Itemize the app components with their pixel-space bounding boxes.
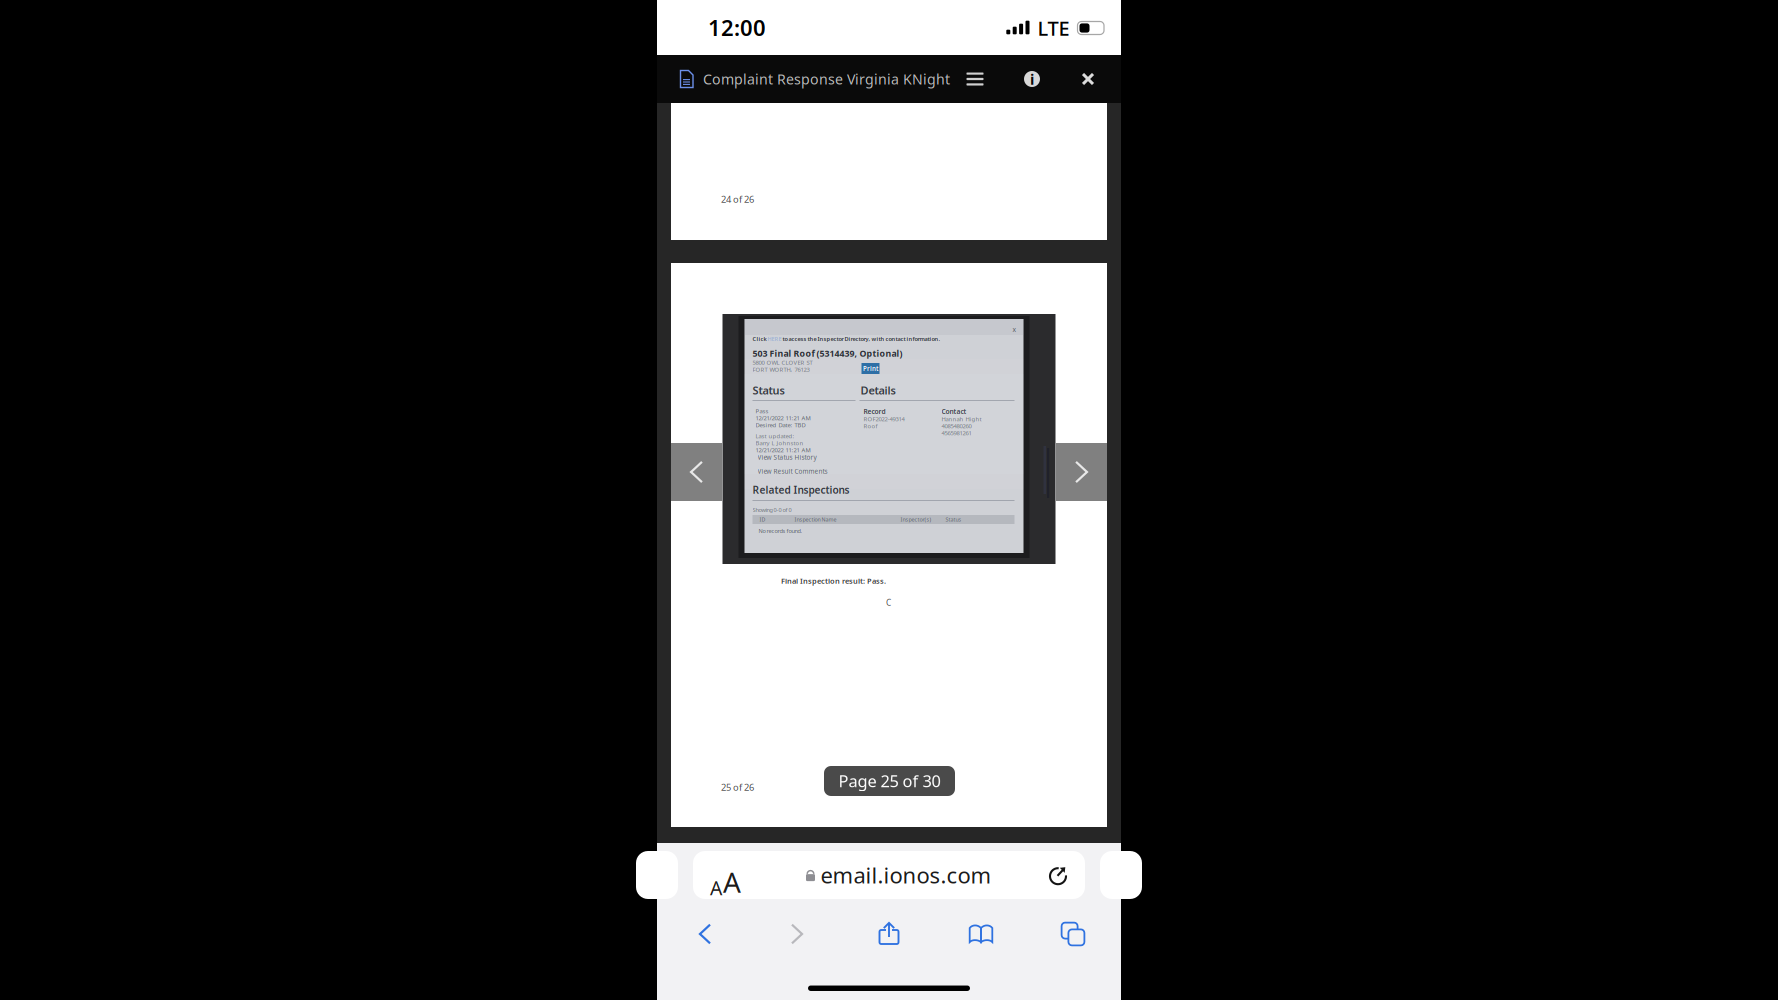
staticText: 503 Final Roof (5314439, Optional) (752, 347, 902, 359)
staticText: HERE (767, 335, 781, 342)
button[interactable]: Close (1077, 68, 1099, 90)
staticText: Hannah Hight (941, 415, 981, 423)
button[interactable]: Bookmarks (959, 914, 1003, 954)
staticText: A (710, 875, 722, 901)
button[interactable]: Previous page (671, 443, 722, 501)
staticText: 5800 OWL CLOVER ST (752, 358, 812, 366)
staticText: A (723, 863, 741, 901)
button[interactable]: Text size (710, 853, 750, 897)
staticText: 24 of 26 (721, 193, 754, 205)
staticText: Page 25 of 30 (838, 770, 940, 792)
staticText: No records found. (758, 527, 802, 534)
button[interactable]: Next page (1056, 443, 1107, 501)
staticText: Complaint Response Virginia KNight (703, 70, 950, 88)
staticText: Print (863, 364, 878, 372)
staticText: Final Inspection result: Pass. (781, 576, 886, 586)
button[interactable]: Document info (1021, 68, 1043, 90)
staticText: 12/21/2022 11:21 AM (755, 414, 810, 422)
staticText: i (1030, 69, 1034, 89)
staticText: Last updated: (755, 432, 794, 440)
staticText: 12:00 (708, 13, 766, 42)
staticText: Contact (941, 407, 966, 416)
staticText: to access the Inspector Directory, with … (781, 335, 940, 342)
button[interactable]: Tabs (1051, 914, 1095, 954)
staticText: x (1012, 325, 1016, 334)
staticText: Barry L Johnston (755, 439, 803, 447)
staticText: Click (752, 335, 767, 342)
staticText: View Result Comments (757, 467, 827, 475)
staticText: Roof (863, 422, 877, 430)
staticText: LTE (1037, 15, 1069, 41)
staticText: 4085480260 (941, 422, 971, 430)
button[interactable]: Reload (1047, 863, 1071, 887)
staticText: 4565981261 (941, 429, 971, 437)
staticText: ID (759, 516, 765, 523)
staticText: Desired Date: TBD (755, 421, 805, 429)
staticText: Related Inspections (752, 483, 849, 496)
staticText: ROF2022-49314 (863, 415, 904, 423)
staticText: FORT WORTH, 76123 (752, 365, 809, 373)
staticText: Status (752, 383, 784, 397)
staticText: Details (860, 383, 895, 397)
staticText: 12/21/2022 11:21 AM (755, 446, 810, 454)
button[interactable]: Share (867, 914, 911, 954)
staticText: C (886, 597, 891, 608)
button[interactable]: Menu (964, 68, 986, 90)
staticText: 25 of 26 (721, 781, 754, 793)
staticText: Pass (755, 407, 768, 415)
staticText: Showing 0-0 of 0 (752, 506, 791, 513)
button[interactable]: Forward (775, 914, 819, 954)
staticText: email.ionos.com (820, 860, 991, 890)
staticText: View Status History (757, 453, 816, 461)
staticText: Inspector(s) (900, 516, 931, 523)
staticText: Record (863, 407, 885, 416)
staticText: Status (945, 516, 961, 523)
button[interactable]: Back (683, 914, 727, 954)
staticText: Inspection Name (794, 516, 836, 523)
